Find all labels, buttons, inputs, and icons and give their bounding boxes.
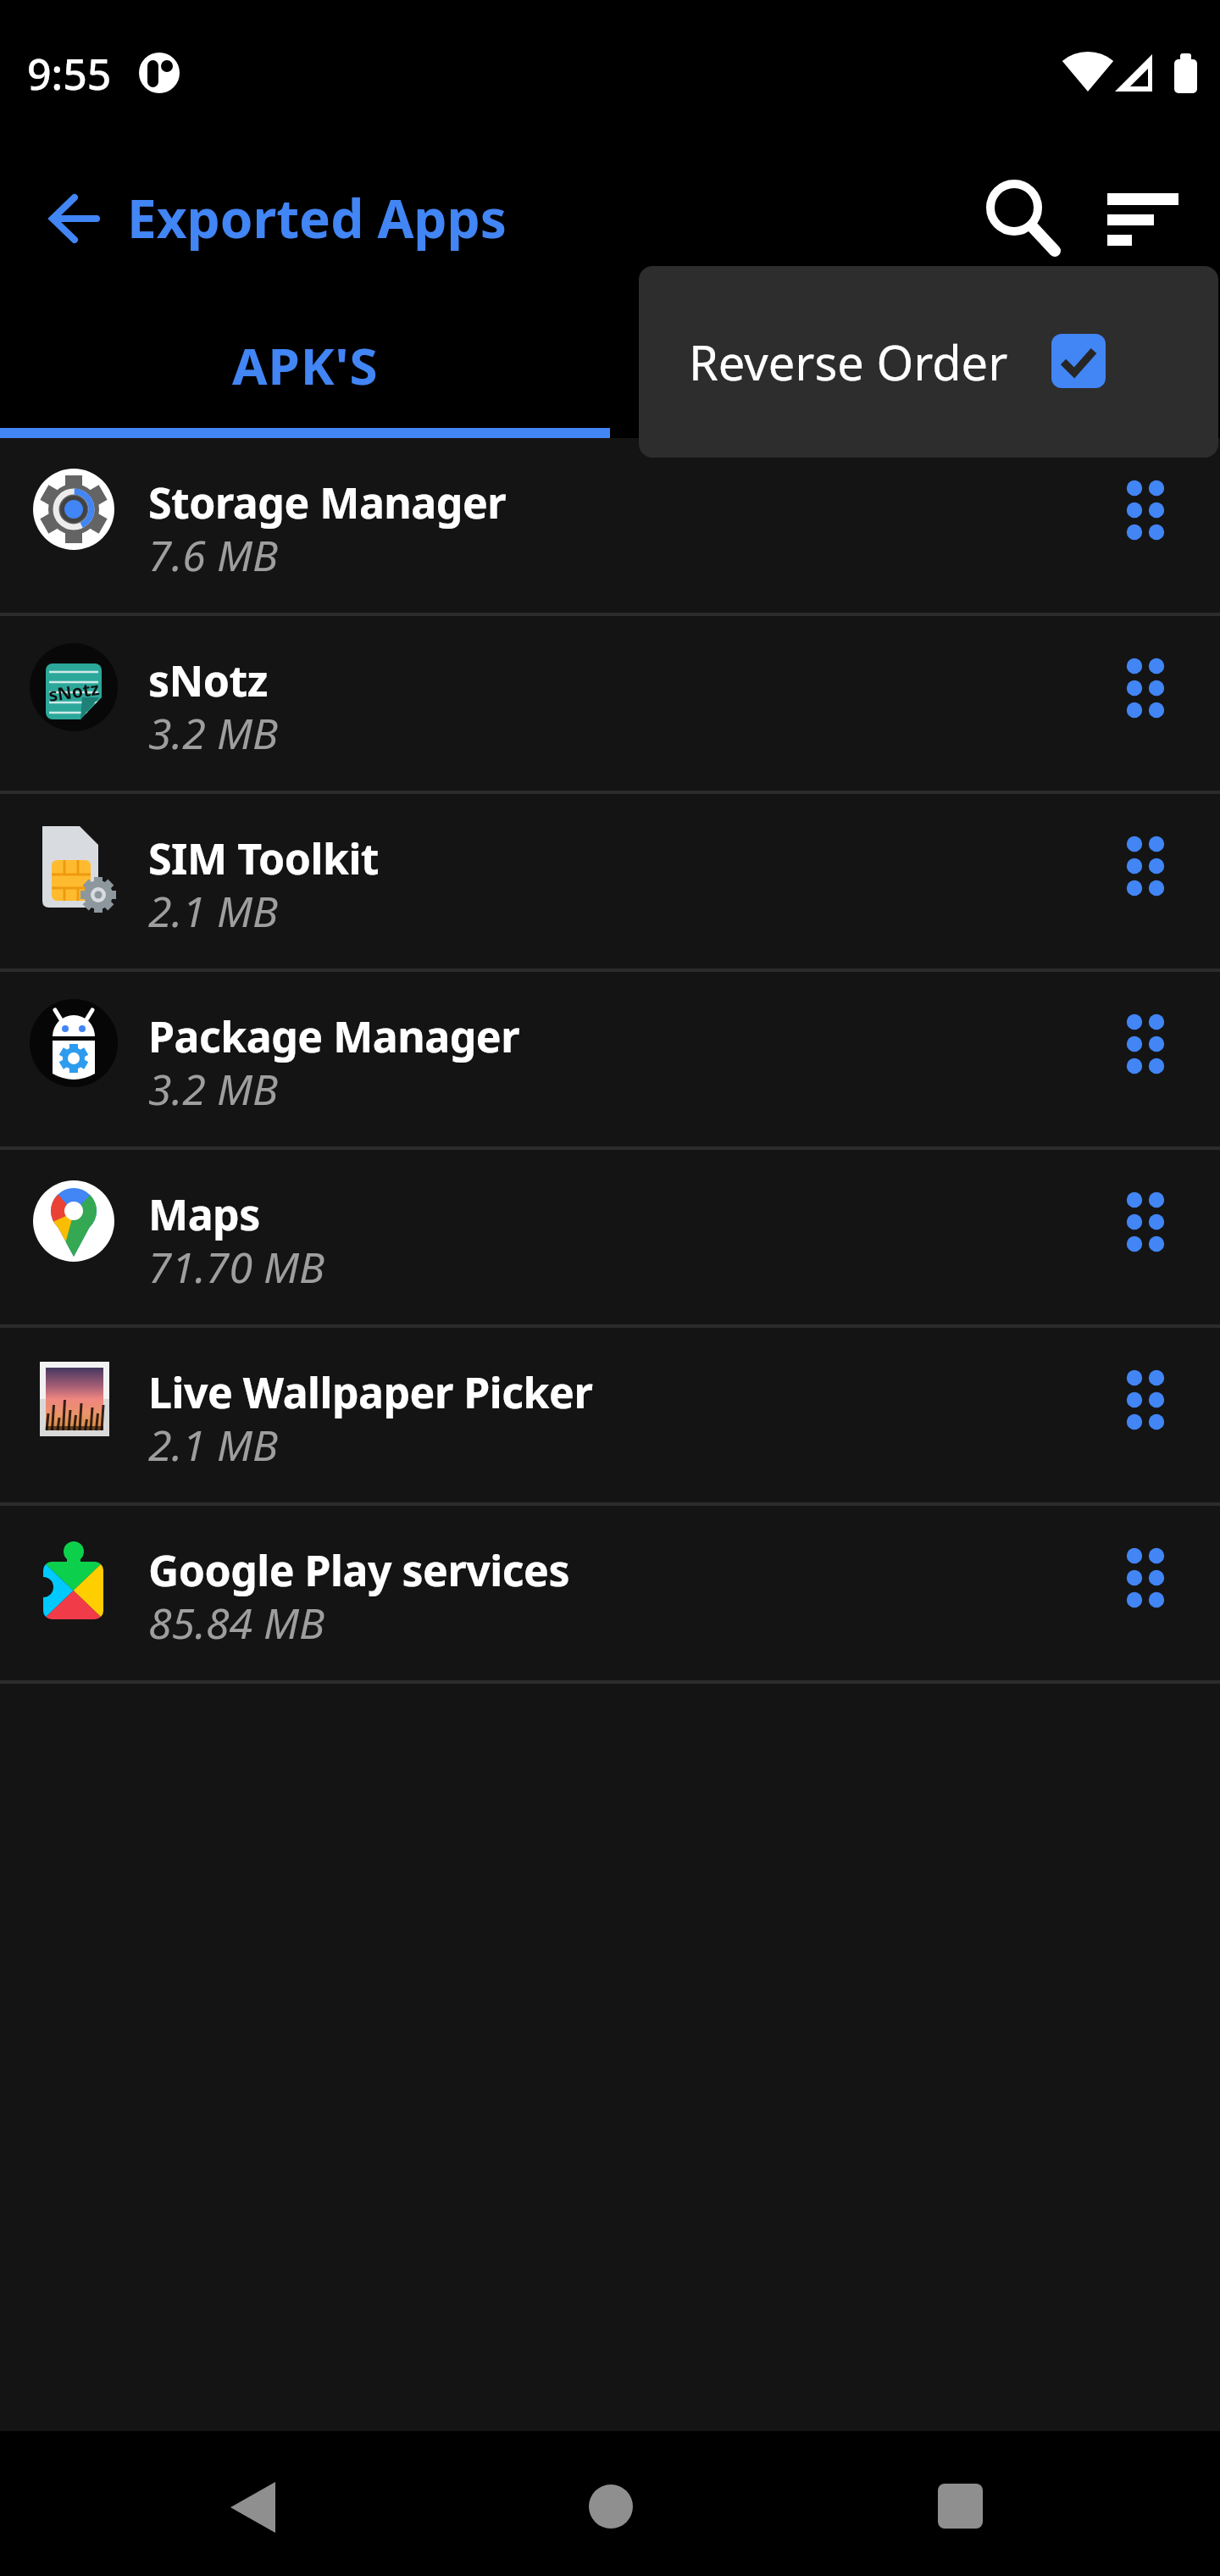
button[interactable]: sNotz [0,616,1220,794]
staticText: Live Wallpaper Picker [148,1363,593,1421]
staticText: 85.84 MB [148,1594,325,1652]
staticText: 3.2 MB [148,1060,278,1118]
button[interactable]: SIM Toolkit [0,794,1220,972]
button[interactable] [1089,166,1190,268]
button[interactable]: Package Manager [0,972,1220,1150]
staticText: Reverse Order [689,330,1008,394]
staticText: Google Play services [148,1541,570,1599]
staticText: 3.2 MB [148,704,278,762]
staticText: 2.1 MB [148,882,278,940]
button[interactable] [974,166,1076,268]
staticText: Maps [148,1185,260,1243]
staticText: Package Manager [148,1008,520,1065]
staticText: 2.1 MB [148,1416,278,1474]
button[interactable]: Storage Manager [0,438,1220,616]
staticText: 9:55 [27,45,112,103]
button[interactable]: Google Play services [0,1506,1220,1684]
button[interactable] [34,178,119,263]
staticText: SIM Toolkit [148,830,380,887]
staticText: 7.6 MB [148,526,278,584]
staticText: sNotz [47,676,101,708]
staticText: APK'S [232,330,379,400]
button[interactable] [0,314,610,432]
button[interactable]: Maps [0,1150,1220,1328]
staticText: Exported Apps [127,182,507,253]
staticText: 71.70 MB [148,1238,325,1296]
staticText: Storage Manager [148,474,507,531]
button[interactable]: Reverse Order [639,266,1218,458]
staticText: sNotz [148,652,268,709]
button[interactable]: Live Wallpaper Picker [0,1328,1220,1506]
